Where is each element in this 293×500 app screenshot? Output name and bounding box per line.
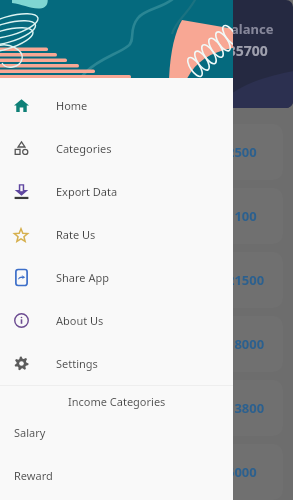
staticText: 13800 bbox=[227, 399, 265, 417]
button[interactable]: Settings bbox=[0, 342, 233, 385]
button[interactable]: Share App bbox=[0, 256, 233, 299]
button[interactable]: About Us bbox=[0, 299, 233, 342]
button[interactable]: Rate Us bbox=[0, 213, 233, 256]
staticText: Share App bbox=[56, 270, 109, 285]
staticText: About Us bbox=[56, 313, 104, 328]
button[interactable]: Reward bbox=[0, 454, 233, 497]
staticText: Settings bbox=[56, 356, 98, 371]
staticText: Rate Us bbox=[56, 227, 96, 242]
staticText: 5000 bbox=[227, 463, 257, 481]
staticText: 21500 bbox=[227, 271, 265, 289]
staticText: Reward bbox=[14, 468, 53, 483]
staticText: Total Balance bbox=[187, 20, 274, 38]
staticText: Salary bbox=[14, 425, 46, 440]
staticText: 1100 bbox=[227, 207, 257, 225]
staticText: ₹ 35700 bbox=[216, 41, 268, 60]
staticText: Categories bbox=[56, 141, 112, 156]
staticText: 2500 bbox=[227, 143, 257, 161]
staticText: Export Data bbox=[56, 184, 118, 199]
staticText: Home bbox=[56, 98, 88, 113]
button[interactable]: Categories bbox=[0, 127, 233, 170]
button[interactable]: Salary bbox=[0, 411, 233, 454]
button[interactable]: Home bbox=[0, 84, 233, 127]
staticText: 18000 bbox=[227, 335, 265, 353]
button[interactable]: Export Data bbox=[0, 170, 233, 213]
staticText: Income Categories bbox=[68, 394, 166, 409]
